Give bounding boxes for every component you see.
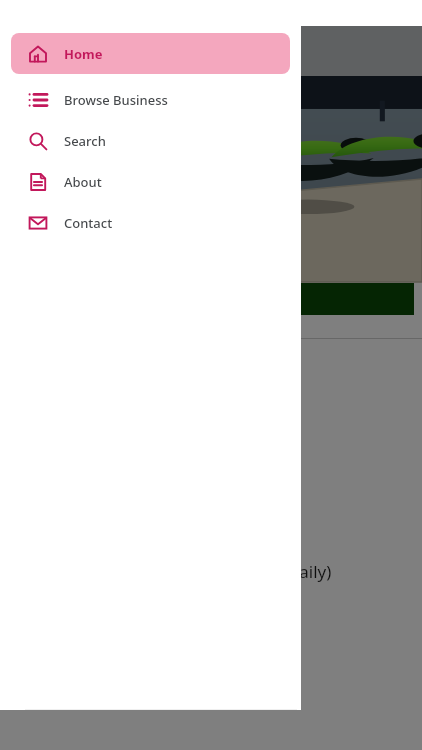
button[interactable]: Jet Ski Rental (Half Day / Full Day) — [10, 400, 411, 533]
button[interactable]: About — [11, 161, 290, 202]
staticText: Home — [64, 45, 103, 63]
button[interactable] — [0, 26, 422, 750]
staticText: Browse Business — [64, 91, 168, 109]
staticText: About — [64, 173, 102, 191]
button[interactable]: Contact — [11, 202, 290, 243]
button[interactable]: Home — [11, 33, 290, 74]
button[interactable]: Browse Business — [11, 79, 290, 120]
staticText: Contact — [64, 214, 113, 232]
staticText: Search — [64, 132, 106, 150]
staticText: Boat Tours of the Marina (Shows Daily) — [24, 560, 332, 583]
button[interactable]: Boat Tours of the Marina (Shows Daily) — [10, 548, 411, 700]
button[interactable]: Search — [11, 120, 290, 161]
button[interactable] — [8, 283, 414, 315]
